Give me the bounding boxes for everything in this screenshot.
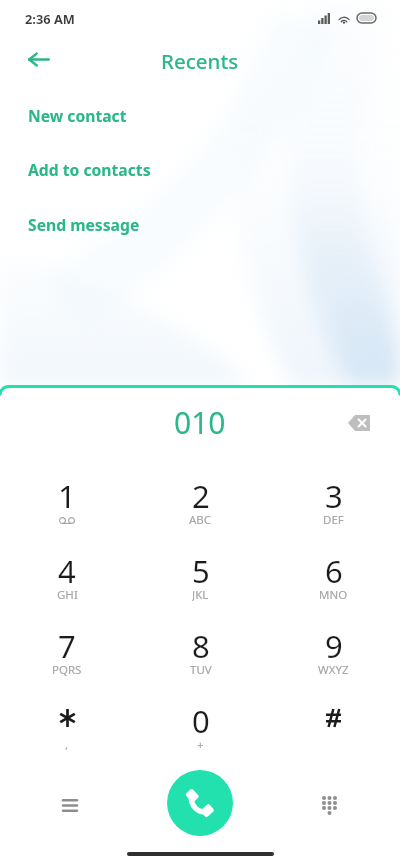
button[interactable]: Call bbox=[167, 770, 233, 836]
button[interactable]: New contact bbox=[0, 93, 400, 137]
button[interactable]: Menu bbox=[48, 783, 92, 827]
staticText: 2 bbox=[192, 475, 210, 508]
staticText: 1 bbox=[58, 475, 76, 508]
button[interactable]: 5 bbox=[134, 538, 267, 613]
button[interactable]: 0 bbox=[134, 688, 267, 763]
staticText: WXYZ bbox=[318, 662, 349, 676]
staticText: , bbox=[65, 737, 69, 751]
button[interactable]: 2 bbox=[134, 463, 267, 538]
staticText: + bbox=[197, 737, 204, 751]
staticText: 9 bbox=[325, 625, 343, 658]
button[interactable]: Back bbox=[20, 40, 58, 78]
staticText: Add to contacts bbox=[28, 159, 151, 180]
button[interactable]: 1 bbox=[0, 463, 134, 538]
button[interactable]: 7 bbox=[0, 613, 134, 688]
staticText: 7 bbox=[58, 625, 76, 658]
staticText: 0 bbox=[192, 700, 210, 733]
button[interactable]: Send message bbox=[0, 202, 400, 246]
staticText: PQRS bbox=[52, 662, 82, 676]
button[interactable]: 4 bbox=[0, 538, 134, 613]
staticText: 3 bbox=[325, 475, 343, 508]
button[interactable]: 8 bbox=[134, 613, 267, 688]
button[interactable]: Backspace bbox=[339, 403, 379, 443]
staticText: 010 bbox=[174, 402, 226, 443]
staticText: Send message bbox=[28, 214, 140, 235]
staticText: DEF bbox=[323, 512, 344, 526]
staticText: GHI bbox=[57, 587, 78, 601]
staticText: 4 bbox=[58, 550, 76, 583]
button[interactable]: Dialpad bbox=[307, 783, 351, 827]
staticText: TUV bbox=[190, 662, 212, 676]
button[interactable]: Star bbox=[0, 688, 134, 763]
staticText: MNO bbox=[319, 587, 348, 601]
staticText: 5 bbox=[192, 550, 210, 583]
button[interactable]: Pound bbox=[267, 688, 400, 763]
button[interactable]: Add to contacts bbox=[0, 147, 400, 191]
button[interactable]: 3 bbox=[267, 463, 400, 538]
staticText: 8 bbox=[192, 625, 210, 658]
staticText: JKL bbox=[192, 587, 209, 601]
staticText: Recents bbox=[161, 47, 239, 75]
button[interactable]: 6 bbox=[267, 538, 400, 613]
staticText: 6 bbox=[325, 550, 343, 583]
button[interactable]: 9 bbox=[267, 613, 400, 688]
staticText: 2:36 AM bbox=[25, 10, 75, 27]
staticText: ABC bbox=[189, 512, 212, 526]
staticText: New contact bbox=[28, 105, 127, 126]
